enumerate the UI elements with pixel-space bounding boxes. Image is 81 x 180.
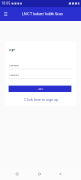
button[interactable]: Open navigation menu (0, 7, 11, 21)
staticText: Username (9, 64, 19, 67)
staticText: Login (9, 48, 15, 51)
staticText: 10:05 (1, 2, 10, 5)
button[interactable]: Recent apps (13, 168, 22, 180)
button[interactable]: Click here to sign up (5, 97, 76, 102)
button[interactable]: LOGIN (9, 86, 71, 92)
staticText: Click here to sign up (24, 97, 58, 102)
staticText: LNCT Indore/Indith Scan (22, 12, 63, 16)
staticText: LOGIN (37, 88, 42, 90)
button[interactable]: Back (56, 168, 65, 180)
staticText: Password (9, 73, 19, 76)
button[interactable]: Home (35, 168, 44, 180)
